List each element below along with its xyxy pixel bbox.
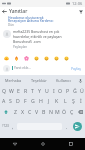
staticText: K	[55, 97, 59, 104]
staticText: W	[9, 87, 14, 94]
staticText: S	[9, 97, 12, 104]
button[interactable]: J	[45, 95, 53, 106]
staticText: B	[42, 108, 46, 115]
staticText: ?123	[2, 124, 9, 128]
button[interactable]: Q	[0, 85, 8, 96]
button[interactable]: Ç	[68, 106, 75, 117]
button[interactable]: Reaction	[61, 54, 71, 62]
button[interactable]: Voice input	[76, 76, 85, 85]
staticText: Ö	[62, 108, 67, 115]
staticText: .	[66, 123, 68, 130]
button[interactable]: Reaction	[11, 54, 21, 62]
button[interactable]: Y	[36, 85, 43, 96]
staticText: Resepsiyon Arasına Yardımcı	[8, 18, 54, 23]
staticText: Paylaşılan	[13, 45, 28, 49]
button[interactable]: Reaction	[51, 54, 61, 62]
button[interactable]: Backspace	[75, 106, 85, 117]
staticText: E	[17, 87, 20, 94]
staticText: Ğ	[73, 87, 77, 94]
button[interactable]: A	[0, 95, 7, 106]
button[interactable]: Ü	[78, 85, 85, 96]
button[interactable]: ?123	[0, 119, 10, 133]
button[interactable]: İ	[77, 95, 85, 106]
button[interactable]: O	[57, 85, 64, 96]
staticText: Merhaba	[5, 78, 22, 83]
staticText: M	[55, 108, 60, 115]
button[interactable]: V	[33, 106, 40, 117]
button[interactable]: S	[7, 95, 14, 106]
staticText: mefta2235 Bonushost en çok	[13, 29, 60, 34]
staticText: U	[45, 87, 49, 94]
button[interactable]: B	[40, 106, 47, 117]
button[interactable]: R	[22, 85, 29, 96]
staticText: Dün	[8, 23, 14, 27]
button[interactable]: L	[61, 95, 69, 106]
button[interactable]: Teşekkür	[26, 76, 51, 85]
button[interactable]: Z	[11, 106, 19, 117]
button[interactable]: .	[63, 119, 70, 133]
staticText: N	[49, 108, 53, 115]
button[interactable]: N	[47, 106, 54, 117]
button[interactable]: Shift	[0, 106, 11, 117]
staticText: J	[48, 97, 50, 104]
staticText: T	[31, 87, 34, 94]
button[interactable]: Reaction	[21, 54, 31, 62]
button[interactable]: X	[19, 106, 26, 117]
button[interactable]: I	[50, 85, 57, 96]
staticText: Ü	[80, 87, 84, 94]
staticText: Z	[14, 108, 17, 115]
button[interactable]: D	[14, 95, 21, 106]
staticText: I	[53, 87, 55, 94]
staticText: Yanıt ekle...	[14, 66, 31, 70]
button[interactable]: T	[29, 85, 36, 96]
staticText: Yanıtlar	[9, 8, 28, 15]
staticText: F	[24, 97, 27, 104]
staticText: O	[58, 87, 63, 94]
button[interactable]: Ğ	[71, 85, 78, 96]
button[interactable]: Paylaş	[70, 65, 82, 71]
button[interactable]: Back	[0, 138, 29, 150]
button[interactable]: E	[15, 85, 22, 96]
staticText: Q	[2, 87, 7, 94]
button[interactable]: Ö	[61, 106, 68, 117]
button[interactable]: W	[8, 85, 15, 96]
staticText: V	[35, 108, 39, 115]
button[interactable]: Reaction	[41, 54, 51, 62]
button[interactable]: H	[37, 95, 45, 106]
staticText: D	[16, 97, 20, 104]
button[interactable]: C	[26, 106, 33, 117]
button[interactable]: Back	[0, 7, 9, 16]
staticText: G	[31, 97, 35, 104]
staticText: P	[66, 87, 70, 94]
button[interactable]: M	[54, 106, 61, 117]
button[interactable]: ,	[10, 119, 16, 133]
staticText: A	[2, 97, 6, 104]
button[interactable]: Reaction	[1, 54, 11, 62]
button[interactable]: F	[21, 95, 29, 106]
staticText: H	[39, 97, 43, 104]
staticText: 12:06	[72, 1, 83, 6]
button[interactable]: K	[53, 95, 61, 106]
button[interactable]: Recents	[57, 138, 85, 150]
staticText: Ç	[70, 108, 74, 115]
button[interactable]: U	[43, 85, 50, 96]
button[interactable]: G	[29, 95, 37, 106]
button[interactable]: Filter	[76, 7, 85, 16]
button[interactable]: Home	[29, 138, 57, 150]
staticText: R	[24, 87, 28, 94]
staticText: Teşekkür	[31, 78, 47, 83]
staticText: İ	[80, 97, 82, 104]
staticText: Y	[38, 87, 41, 94]
staticText: C	[28, 108, 32, 115]
button[interactable]: Send	[70, 119, 85, 133]
button[interactable]: Ş	[69, 95, 77, 106]
staticText: L	[64, 97, 67, 104]
button[interactable]: Reaction	[31, 54, 41, 62]
button[interactable]: Merhaba	[0, 76, 26, 85]
staticText: hazırdırlar, etkinlik ve paylaşan	[13, 34, 62, 39]
staticText: ,	[12, 123, 14, 130]
button[interactable]: P	[64, 85, 71, 96]
staticText: Hesabınızı oluşturarak	[8, 15, 44, 20]
button[interactable]: Kullanıcı	[51, 76, 76, 85]
